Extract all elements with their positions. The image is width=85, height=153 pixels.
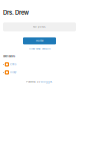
staticText: Chris bbox=[10, 63, 16, 66]
button[interactable]: Vicky bbox=[3, 70, 85, 74]
staticText: View web version bbox=[29, 47, 50, 50]
staticText: Drs. Drew bbox=[3, 9, 29, 16]
staticText: Home bbox=[36, 39, 43, 42]
staticText: No posts. bbox=[33, 25, 46, 28]
staticText: Contributors bbox=[3, 55, 15, 58]
button[interactable]: View web version bbox=[3, 47, 76, 50]
staticText: Vicky bbox=[10, 71, 16, 74]
button[interactable]: Chris bbox=[3, 62, 85, 66]
staticText: . bbox=[52, 80, 53, 83]
staticText: Blogger bbox=[41, 80, 52, 83]
staticText: Powered by bbox=[26, 80, 41, 83]
button[interactable]: Home bbox=[23, 37, 56, 44]
